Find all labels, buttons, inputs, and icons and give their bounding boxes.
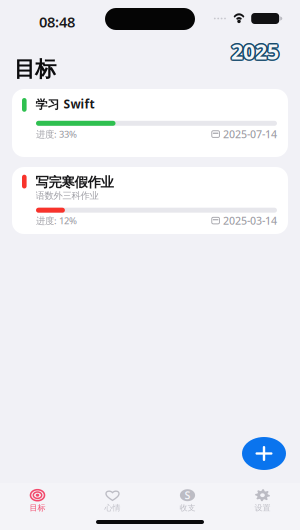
button[interactable]: 学习 Swift	[12, 89, 288, 157]
staticText: 2025	[230, 36, 278, 64]
button[interactable]: S	[150, 487, 225, 519]
button[interactable]: 写完寒假作业	[12, 167, 288, 234]
staticText: 进度: 12%	[36, 214, 77, 227]
staticText: 目标	[29, 503, 45, 513]
staticText: 08:48	[39, 12, 75, 31]
staticText: 2025	[232, 38, 280, 66]
button[interactable]: Add goal	[242, 437, 286, 470]
button[interactable]: 设置	[225, 487, 300, 519]
staticText: S	[184, 488, 190, 502]
button[interactable]: 目标	[0, 487, 75, 519]
staticText: 2025	[231, 38, 279, 67]
staticText: 2025	[230, 37, 278, 65]
staticText: 2025	[231, 36, 279, 64]
staticText: 心情	[104, 503, 120, 513]
staticText: 2025	[231, 37, 279, 65]
staticText: 2025	[230, 38, 278, 66]
staticText: 2025	[232, 36, 280, 64]
staticText: 收支	[179, 503, 195, 513]
staticText: 设置	[254, 503, 270, 513]
staticText: 2025-03-14	[223, 213, 277, 228]
staticText: 2025	[232, 37, 280, 65]
staticText: 进度: 33%	[36, 128, 77, 140]
button[interactable]: 心情	[75, 487, 150, 519]
staticText: 2025-07-14	[223, 127, 277, 141]
staticText: 目标	[14, 56, 56, 82]
staticText: 写完寒假作业	[35, 174, 113, 190]
staticText: 语数外三科作业	[35, 190, 98, 201]
staticText: 学习 Swift	[35, 96, 94, 112]
